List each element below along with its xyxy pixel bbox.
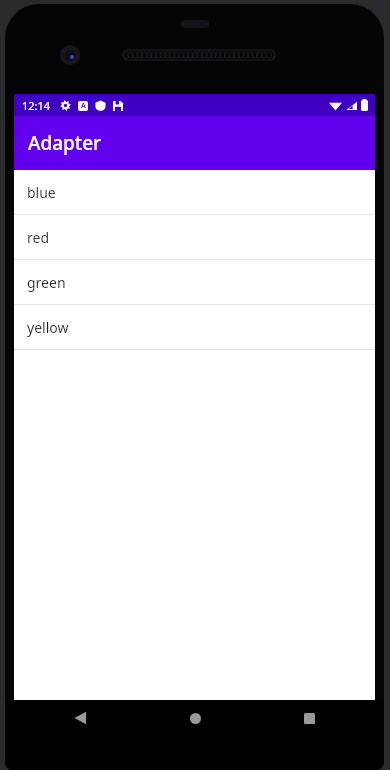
staticText: green	[27, 273, 66, 292]
staticText: Adapter	[28, 130, 102, 156]
button[interactable]: Home	[178, 701, 212, 735]
button[interactable]: Recent apps	[292, 701, 326, 735]
staticText: yellow	[27, 318, 69, 337]
button[interactable]: yellow	[14, 305, 375, 349]
staticText: blue	[27, 183, 56, 202]
button[interactable]: blue	[14, 170, 375, 214]
staticText: 12:14	[22, 98, 51, 113]
button[interactable]: red	[14, 215, 375, 259]
button[interactable]: Back	[63, 701, 97, 735]
button[interactable]: green	[14, 260, 375, 304]
staticText: A	[81, 101, 86, 111]
staticText: red	[27, 228, 50, 247]
